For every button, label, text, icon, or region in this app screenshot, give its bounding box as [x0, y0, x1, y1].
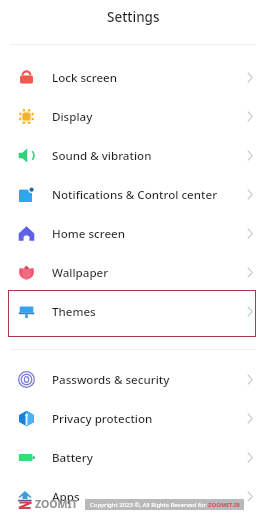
staticText: Passwords & security	[52, 372, 170, 388]
staticText: Privacy protection	[52, 411, 153, 427]
button[interactable]: Wallpaper	[0, 253, 266, 292]
button[interactable]: Notifications & Control center	[0, 175, 266, 214]
button[interactable]: Themes	[0, 292, 266, 331]
button[interactable]: Privacy protection	[0, 399, 266, 438]
staticText: Lock screen	[52, 70, 118, 86]
staticText: ZOOMIT.IR	[208, 501, 240, 509]
button[interactable]: Home screen	[0, 214, 266, 253]
staticText: Apps	[52, 489, 80, 505]
staticText: ZOOMIT	[35, 497, 78, 511]
button[interactable]: Lock screen	[0, 58, 266, 97]
button[interactable]: Passwords & security	[0, 360, 266, 399]
button[interactable]: Battery	[0, 438, 266, 477]
staticText: Display	[52, 109, 93, 125]
staticText: Settings	[107, 8, 160, 26]
button[interactable]: Apps	[0, 477, 266, 516]
staticText: Sound & vibration	[52, 148, 152, 164]
staticText: Notifications & Control center	[52, 187, 218, 203]
staticText: Home screen	[52, 226, 125, 242]
button[interactable]: Sound & vibration	[0, 136, 266, 175]
staticText: Themes	[52, 304, 96, 320]
staticText: Battery	[52, 450, 93, 466]
staticText: Wallpaper	[52, 265, 109, 281]
staticText: Copyright 2023 ©, All Rights Reserved fo…	[90, 501, 208, 509]
button[interactable]: Display	[0, 97, 266, 136]
